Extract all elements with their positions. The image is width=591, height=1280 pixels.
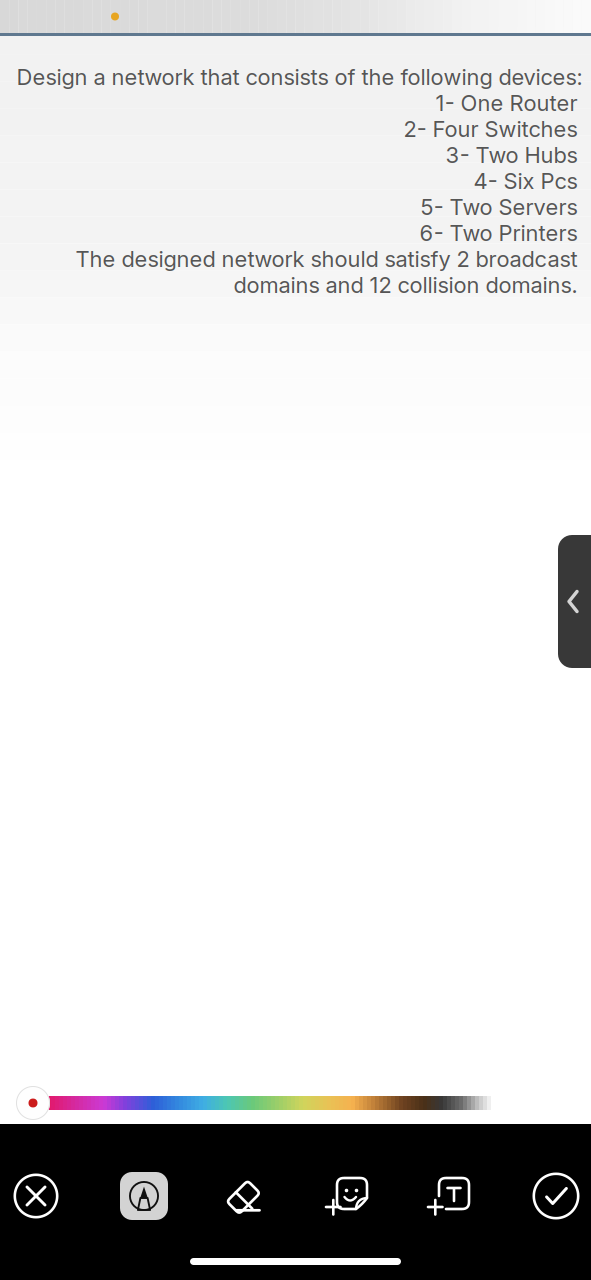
button[interactable]: Add sticker bbox=[315, 1164, 379, 1228]
button[interactable]: Add text bbox=[417, 1164, 481, 1228]
button[interactable]: Show tools bbox=[558, 535, 591, 668]
button[interactable]: Pen bbox=[112, 1164, 176, 1228]
staticText: domains and 12 collision domains. bbox=[233, 272, 577, 298]
staticText: 3- Two Hubs bbox=[445, 142, 577, 168]
staticText: 6- Two Printers bbox=[419, 220, 577, 246]
staticText: Design a network that consists of the fo… bbox=[16, 64, 582, 90]
button[interactable]: Done bbox=[524, 1164, 588, 1228]
staticText: The designed network should satisfy 2 br… bbox=[75, 246, 577, 272]
staticText: 4- Six Pcs bbox=[473, 168, 577, 194]
button[interactable]: Close bbox=[4, 1164, 68, 1228]
staticText: 1- One Router bbox=[435, 90, 577, 116]
button[interactable]: Eraser bbox=[211, 1164, 275, 1228]
staticText: 2- Four Switches bbox=[403, 116, 577, 142]
staticText: 5- Two Servers bbox=[420, 194, 577, 220]
button[interactable]: Selected colour bbox=[16, 1086, 50, 1120]
